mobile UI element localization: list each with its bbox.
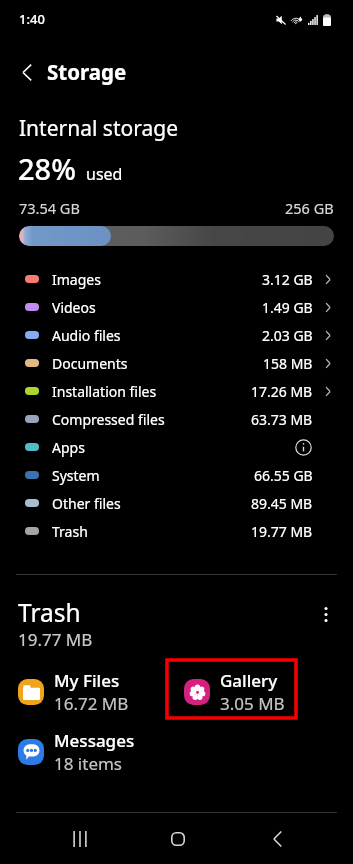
button[interactable]: Videos <box>0 293 353 321</box>
staticText: Gallery <box>220 669 278 692</box>
staticText: Images <box>52 270 101 289</box>
button[interactable]: Apps <box>0 433 353 461</box>
button[interactable]: Messages <box>0 725 150 779</box>
button[interactable]: More options <box>312 600 340 628</box>
button[interactable]: Recent apps <box>47 813 112 864</box>
staticText: Trash <box>52 522 88 541</box>
staticText: System <box>52 466 100 485</box>
button[interactable]: Other files <box>0 489 353 517</box>
staticText: Messages <box>54 729 135 752</box>
staticText: 19.77 MB <box>251 522 313 541</box>
staticText: 3.05 MB <box>220 692 285 715</box>
staticText: 73.54 GB <box>19 198 80 218</box>
staticText: 89.45 MB <box>251 494 313 513</box>
staticText: Installation files <box>52 382 157 401</box>
staticText: My Files <box>54 669 120 692</box>
staticText: Documents <box>52 354 128 373</box>
staticText: 158 MB <box>263 354 313 373</box>
button[interactable]: Audio files <box>0 321 353 349</box>
staticText: Trash <box>18 596 81 629</box>
staticText: 3.12 GB <box>262 270 313 289</box>
staticText: 2.03 GB <box>262 326 313 345</box>
staticText: 1:40 <box>19 10 45 28</box>
button[interactable]: Gallery <box>166 665 316 719</box>
button[interactable]: System <box>0 461 353 489</box>
staticText: 17.26 MB <box>251 382 313 401</box>
staticText: 66.55 GB <box>254 466 313 485</box>
staticText: Compressed files <box>52 410 165 429</box>
staticText: 1.49 GB <box>262 298 313 317</box>
staticText: Other files <box>52 494 121 513</box>
button[interactable]: My Files <box>0 665 150 719</box>
button[interactable]: Trash <box>0 517 353 545</box>
staticText: Apps <box>52 438 85 457</box>
button[interactable]: Back <box>245 813 310 864</box>
staticText: 256 GB <box>285 198 334 218</box>
button[interactable]: Compressed files <box>0 405 353 433</box>
staticText: Audio files <box>52 326 121 345</box>
staticText: 16.72 MB <box>54 692 129 715</box>
staticText: 28% <box>18 149 76 188</box>
staticText: used <box>86 163 123 185</box>
staticText: 18 items <box>54 752 123 775</box>
staticText: Storage <box>47 58 127 86</box>
staticText: 63.73 MB <box>251 410 313 429</box>
button[interactable]: Home <box>145 813 210 864</box>
staticText: 19.77 MB <box>18 628 93 651</box>
button[interactable]: Documents <box>0 349 353 377</box>
staticText: Internal storage <box>19 114 178 143</box>
button[interactable]: Installation files <box>0 377 353 405</box>
staticText: Videos <box>52 298 96 317</box>
button[interactable]: Navigate up <box>10 55 44 89</box>
button[interactable]: Images <box>0 265 353 293</box>
